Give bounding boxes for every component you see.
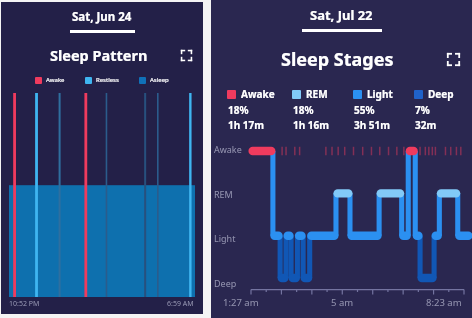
button[interactable]: Expand chart [180,49,193,62]
staticText: 8:23 am [426,296,462,309]
staticText: Awake [241,87,275,101]
staticText: Sleep Stages [281,47,394,72]
staticText: 55% [354,103,375,117]
staticText: 6:59 AM [167,299,194,309]
staticText: 1h 16m [293,118,330,132]
staticText: Asleep [150,76,169,84]
staticText: Deep [214,277,237,289]
button[interactable]: Light [353,87,414,132]
staticText: Sat, Jul 22 [310,6,373,24]
button[interactable]: REM [292,87,353,132]
staticText: 32m [415,118,437,132]
staticText: 3h 51m [354,118,391,132]
staticText: Awake [46,76,65,84]
button[interactable]: Awake [227,87,292,132]
button[interactable]: Awake [35,76,65,84]
staticText: REM [306,87,328,101]
staticText: Sleep Pattern [50,45,148,65]
staticText: Restless [96,76,119,84]
staticText: 18% [293,103,314,117]
staticText: 18% [228,103,249,117]
button[interactable]: Asleep [139,76,169,84]
staticText: Light [367,87,393,101]
staticText: 1:27 am [223,296,259,309]
staticText: Light [214,232,236,244]
button[interactable]: Expand chart [446,52,461,67]
staticText: REM [214,188,233,200]
staticText: 10:52 PM [9,299,40,309]
staticText: 7% [415,103,430,117]
staticText: 5 am [331,296,354,309]
staticText: 1h 17m [228,118,265,132]
staticText: Awake [214,143,242,155]
button[interactable]: Deep [414,87,466,132]
staticText: Deep [428,87,454,101]
staticText: Sat, Jun 24 [72,9,132,25]
button[interactable]: Restless [85,76,119,84]
